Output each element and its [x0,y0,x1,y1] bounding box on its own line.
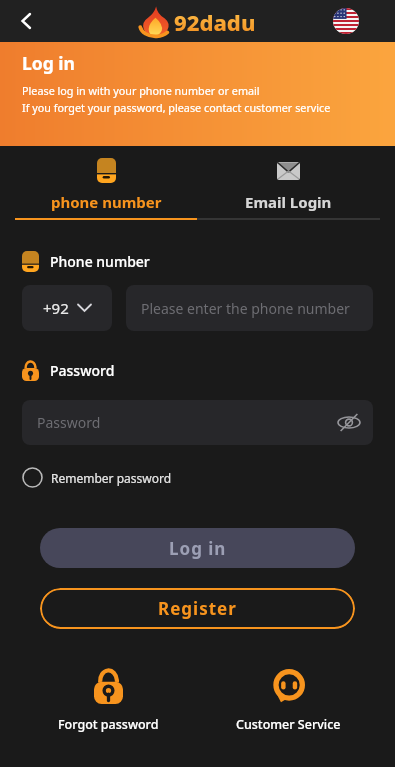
staticText: Customer Service [236,716,341,733]
button[interactable]: Email Login [197,146,380,218]
staticText: Phone number [50,252,150,271]
button[interactable]: Customer Service [208,668,368,733]
staticText: Password [50,361,115,380]
staticText: Log in [22,51,75,75]
button[interactable]: Log in [40,528,355,568]
staticText: Please log in with your phone number or … [22,83,260,98]
staticText: Forgot password [58,716,159,733]
button[interactable] [333,8,359,34]
staticText: Remember password [51,470,172,486]
button[interactable]: phone number [15,146,197,218]
staticText: Please enter the phone number [141,299,350,318]
staticText: Log in [169,537,227,560]
staticText: Register [158,597,237,620]
staticText: 92dadu [174,7,256,37]
staticText: Password [37,413,338,432]
button[interactable] [10,5,42,37]
button[interactable]: Remember password [22,467,172,488]
button[interactable]: Forgot password [28,668,188,733]
button[interactable]: Password [22,400,373,445]
staticText: Email Login [245,192,332,212]
button[interactable]: Please enter the phone number [126,285,373,331]
button[interactable]: Register [40,588,355,629]
staticText: If you forget your password, please cont… [22,100,331,115]
staticText: phone number [51,192,162,212]
button[interactable]: +92 [22,285,112,331]
staticText: +92 [43,298,69,318]
